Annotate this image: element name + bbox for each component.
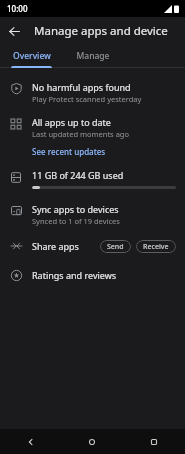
button[interactable]: Back bbox=[0, 429, 61, 454]
staticText: Share apps bbox=[32, 240, 79, 252]
button[interactable]: All apps up to date bbox=[0, 110, 185, 162]
button[interactable]: Ratings and reviews bbox=[0, 260, 185, 290]
button[interactable]: Receive bbox=[136, 240, 176, 253]
staticText: See recent updates bbox=[32, 146, 106, 157]
staticText: Receive bbox=[143, 242, 169, 252]
staticText: Last updated moments ago bbox=[32, 129, 129, 139]
staticText: Ratings and reviews bbox=[32, 269, 117, 281]
staticText: Send bbox=[107, 242, 124, 252]
button[interactable]: 11 GB of 244 GB used bbox=[0, 162, 185, 197]
staticText: Manage apps and device bbox=[34, 23, 168, 39]
staticText: Sync apps to devices bbox=[32, 203, 119, 215]
button[interactable]: See recent updates bbox=[32, 146, 106, 157]
button[interactable]: Overview bbox=[0, 45, 63, 66]
staticText: Synced to 1 of 19 devices bbox=[32, 216, 120, 226]
staticText: 11 GB of 244 GB used bbox=[32, 169, 124, 181]
button[interactable]: Send bbox=[100, 240, 131, 253]
staticText: Overview bbox=[13, 50, 51, 62]
button[interactable]: Sync apps to devices bbox=[0, 197, 185, 232]
button[interactable]: No harmful apps found bbox=[0, 75, 185, 110]
staticText: No harmful apps found bbox=[32, 81, 131, 93]
staticText: All apps up to date bbox=[32, 116, 111, 128]
staticText: Play Protect scanned yesterday bbox=[32, 94, 142, 104]
button[interactable]: Home bbox=[61, 429, 123, 454]
button[interactable]: Manage bbox=[63, 45, 123, 66]
button[interactable]: Back bbox=[0, 17, 28, 45]
button[interactable]: Recent apps bbox=[123, 429, 185, 454]
staticText: Manage bbox=[76, 50, 110, 62]
button[interactable]: Share apps bbox=[0, 232, 185, 260]
staticText: 10:00 bbox=[7, 3, 28, 14]
